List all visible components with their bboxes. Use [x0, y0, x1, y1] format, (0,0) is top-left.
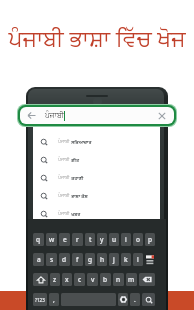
button[interactable]: p: [145, 233, 155, 246]
button[interactable]: a: [33, 253, 44, 266]
staticText: p: [148, 235, 153, 244]
staticText: g: [88, 255, 93, 264]
staticText: x: [65, 275, 69, 284]
staticText: ਪੰਜਾਬੀ: [58, 193, 70, 198]
button[interactable]: c: [74, 273, 85, 286]
staticText: y: [100, 235, 104, 244]
staticText: ,: [53, 295, 55, 304]
staticText: c: [78, 275, 82, 284]
button[interactable]: ਪੰਜਾਬੀ: [33, 205, 160, 223]
button[interactable]: Backspace: [139, 273, 155, 286]
staticText: b: [103, 275, 108, 284]
staticText: l: [137, 255, 139, 264]
staticText: w: [49, 235, 55, 244]
button[interactable]: .: [130, 293, 140, 306]
staticText: o: [136, 235, 140, 244]
staticText: i: [125, 235, 127, 244]
button[interactable]: Shift: [33, 273, 48, 286]
button[interactable]: ?123: [33, 293, 47, 306]
button[interactable]: k: [121, 253, 131, 266]
button[interactable]: t: [85, 233, 95, 246]
staticText: t: [89, 235, 92, 244]
staticText: ਕਹਾਣੀ: [70, 175, 84, 181]
button[interactable]: l: [133, 253, 143, 266]
staticText: ਪੰਜਾਬੀ: [58, 211, 70, 216]
button[interactable]: ,: [49, 293, 59, 306]
staticText: f: [76, 255, 79, 264]
button[interactable]: j: [109, 253, 119, 266]
button[interactable]: o: [133, 233, 143, 246]
staticText: q: [36, 235, 41, 244]
button[interactable]: Back: [20, 107, 174, 124]
staticText: u: [112, 235, 117, 244]
button[interactable]: ਪੰਜਾਬੀ: [33, 151, 160, 169]
button[interactable]: Clear search: [157, 111, 167, 121]
staticText: ਪੰਜਾਬੀ ਭਾਸ਼ਾ ਵਿੱਚ ਖੋਜ: [8, 22, 186, 52]
staticText: z: [53, 275, 57, 284]
staticText: ਸਭਿਆਚਾਰ: [70, 139, 92, 145]
staticText: ਪੰਜਾਬੀ: [45, 112, 64, 120]
button[interactable]: e: [59, 233, 70, 246]
button[interactable]: d: [59, 253, 70, 266]
staticText: d: [62, 255, 67, 264]
staticText: ਖਬਰ: [70, 211, 81, 217]
button[interactable]: Settings: [118, 293, 128, 306]
button[interactable]: m: [126, 273, 137, 286]
staticText: ਗੀਤ: [70, 157, 79, 163]
staticText: r: [76, 235, 79, 244]
button[interactable]: w: [46, 233, 57, 246]
button[interactable]: ਪੰਜਾਬੀ: [33, 187, 160, 205]
staticText: s: [50, 255, 54, 264]
button[interactable]: ਪੰਜਾਬੀ: [33, 133, 160, 151]
button[interactable]: g: [85, 253, 95, 266]
button[interactable]: v: [87, 273, 98, 286]
staticText: n: [116, 275, 121, 284]
staticText: e: [63, 235, 67, 244]
staticText: ਭਾਸ਼ਾ ਕੋਸ਼: [70, 193, 88, 199]
staticText: k: [124, 255, 128, 264]
button[interactable]: Search: [142, 293, 155, 306]
button[interactable]: ਪੰਜਾਬੀ: [33, 169, 160, 187]
button[interactable]: h: [97, 253, 107, 266]
staticText: m: [128, 275, 135, 284]
button[interactable]: s: [46, 253, 57, 266]
button[interactable]: q: [33, 233, 44, 246]
button[interactable]: i: [121, 233, 131, 246]
button[interactable]: Change keyboard language: [145, 253, 155, 266]
staticText: j: [113, 255, 115, 264]
staticText: h: [100, 255, 105, 264]
button[interactable]: u: [109, 233, 119, 246]
staticText: a: [37, 255, 41, 264]
button[interactable]: x: [62, 273, 72, 286]
button[interactable]: b: [100, 273, 111, 286]
staticText: ਪੰਜਾਬੀ: [58, 175, 70, 180]
button[interactable]: n: [113, 273, 124, 286]
staticText: ਪੰਜਾਬੀ: [58, 157, 70, 162]
staticText: .: [134, 295, 136, 304]
staticText: ਪੰਜਾਬੀ: [58, 139, 70, 144]
button[interactable]: r: [72, 233, 83, 246]
button[interactable]: f: [72, 253, 83, 266]
button[interactable]: Back: [27, 111, 36, 120]
button[interactable]: z: [50, 273, 60, 286]
staticText: v: [91, 275, 95, 284]
staticText: ?123: [35, 297, 45, 303]
button[interactable]: y: [97, 233, 107, 246]
